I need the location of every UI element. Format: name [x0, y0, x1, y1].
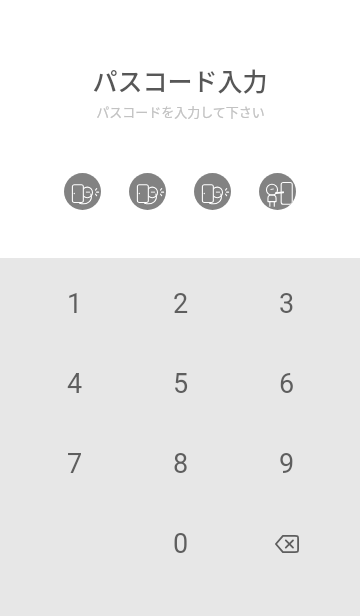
button[interactable]: 8: [128, 424, 234, 504]
button[interactable]: Passcode dot 3: [194, 173, 231, 210]
button[interactable]: 0: [128, 504, 234, 584]
button[interactable]: 9: [234, 424, 340, 504]
button[interactable]: Passcode dot 1: [64, 173, 101, 210]
button[interactable]: Passcode dot 2: [129, 173, 166, 210]
button[interactable]: Delete: [234, 504, 340, 584]
button[interactable]: 5: [128, 344, 234, 424]
staticText: 4: [67, 368, 83, 400]
button[interactable]: 2: [128, 264, 234, 344]
button[interactable]: 4: [22, 344, 128, 424]
button[interactable]: Passcode dot 4: [259, 173, 296, 210]
other: Delete: [275, 535, 299, 553]
staticText: パスコード入力: [92, 62, 268, 98]
button[interactable]: 6: [234, 344, 340, 424]
button[interactable]: 7: [22, 424, 128, 504]
staticText: 8: [173, 448, 189, 480]
button[interactable]: 3: [234, 264, 340, 344]
staticText: 1: [67, 288, 83, 320]
staticText: 9: [279, 448, 295, 480]
staticText: 7: [67, 448, 83, 480]
staticText: パスコードを入力して下さい: [96, 102, 265, 121]
staticText: 3: [279, 288, 295, 320]
staticText: 2: [173, 288, 189, 320]
staticText: 0: [173, 528, 189, 560]
button[interactable]: 1: [22, 264, 128, 344]
staticText: 6: [279, 368, 295, 400]
staticText: 5: [173, 368, 189, 400]
